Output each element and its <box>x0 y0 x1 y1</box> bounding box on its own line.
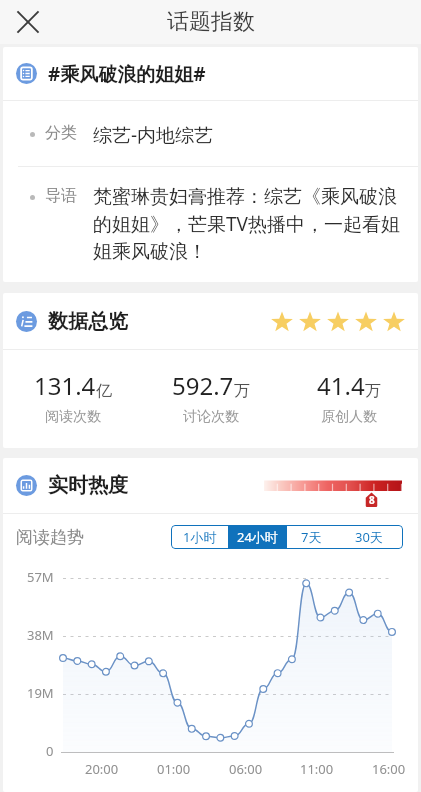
staticText: 分类 <box>45 123 77 143</box>
staticText: #乘风破浪的姐姐# <box>48 61 206 87</box>
staticText: 11:00 <box>300 760 334 778</box>
staticText: 综艺-内地综艺 <box>93 122 400 148</box>
staticText: 阅读次数 <box>45 408 101 426</box>
staticText: 梵蜜琳贵妇膏推荐：综艺《乘风破浪的姐姐》，芒果TV热播中，一起看姐姐乘风破浪！ <box>93 185 400 264</box>
staticText: 话题指数 <box>167 8 255 36</box>
staticText: 57M <box>27 568 54 586</box>
staticText: 万 <box>365 381 381 401</box>
staticText: 实时热度 <box>48 473 128 498</box>
staticText: 0 <box>46 742 54 760</box>
staticText: 8 <box>369 493 375 507</box>
button[interactable]: 30天 <box>335 525 403 549</box>
staticText: 讨论次数 <box>183 408 239 426</box>
staticText: 16:00 <box>372 760 406 778</box>
button[interactable]: 1小时 <box>171 525 228 549</box>
staticText: 7天 <box>301 528 322 546</box>
staticText: 阅读趋势 <box>16 527 84 548</box>
staticText: 原创人数 <box>321 408 377 426</box>
button[interactable]: 24小时 <box>229 525 286 549</box>
staticText: 01:00 <box>157 760 191 778</box>
staticText: 20:00 <box>85 760 119 778</box>
staticText: 数据总览 <box>48 309 128 334</box>
button[interactable]: 7天 <box>287 525 335 549</box>
staticText: 19M <box>27 684 54 702</box>
staticText: 06:00 <box>229 760 263 778</box>
staticText: 38M <box>27 626 54 644</box>
staticText: 592.7 <box>172 369 234 402</box>
staticText: 30天 <box>355 528 383 546</box>
staticText: 万 <box>234 381 250 401</box>
staticText: 41.4 <box>317 369 365 402</box>
staticText: 导语 <box>45 186 77 206</box>
staticText: 亿 <box>96 381 112 401</box>
button[interactable]: Close <box>8 2 48 42</box>
staticText: 1小时 <box>183 528 217 546</box>
staticText: 24小时 <box>237 528 278 546</box>
staticText: 131.4 <box>34 369 96 402</box>
